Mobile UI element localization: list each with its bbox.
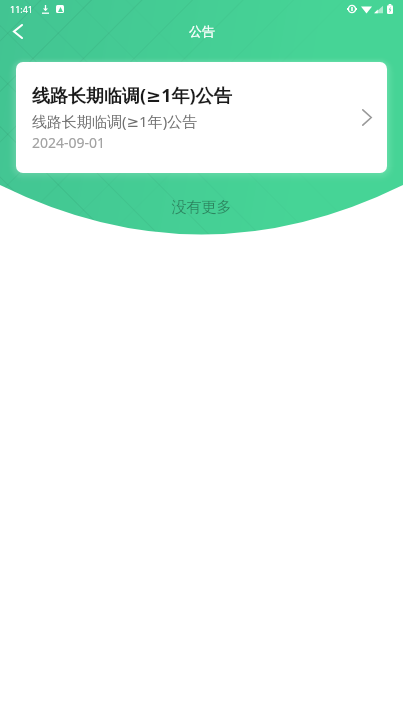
button[interactable]: 线路长期临调(≥1年)公告 <box>16 62 387 173</box>
staticText: 公告 <box>189 23 215 39</box>
button[interactable]: Back <box>0 17 36 45</box>
staticText: 线路长期临调(≥1年)公告 <box>32 111 198 131</box>
staticText: 没有更多 <box>0 198 403 217</box>
staticText: 线路长期临调(≥1年)公告 <box>32 83 232 108</box>
staticText: 2024-09-01 <box>32 133 106 152</box>
staticText: 11:41 <box>10 3 34 15</box>
